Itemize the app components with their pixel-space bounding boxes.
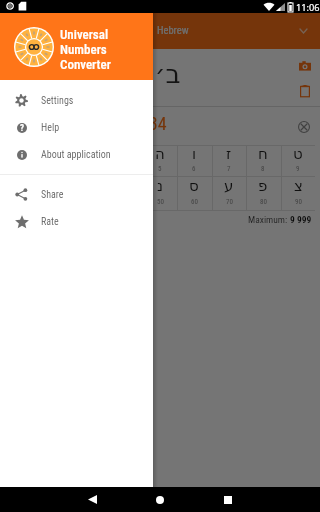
button[interactable]: ג <box>74 145 108 176</box>
staticText: 70 <box>226 198 233 206</box>
button[interactable]: Hebrew <box>0 13 320 49</box>
staticText: ג <box>88 145 95 162</box>
button[interactable]: ב <box>39 145 73 176</box>
button[interactable]: ו <box>177 145 211 176</box>
staticText: 9 <box>296 165 300 173</box>
staticText: Maximum: <box>248 214 290 225</box>
staticText: ו <box>192 145 197 162</box>
staticText: Converter <box>60 57 111 72</box>
button[interactable]: Rate <box>0 208 153 235</box>
staticText: פ <box>258 177 268 194</box>
staticText: ס <box>189 177 199 194</box>
button[interactable]: ס <box>177 176 211 210</box>
button[interactable]: ט <box>281 145 315 176</box>
button[interactable]: ח <box>246 145 280 176</box>
button[interactable]: ? <box>0 114 153 141</box>
staticText: ? <box>20 123 25 133</box>
button[interactable]: כ <box>39 176 73 210</box>
staticText: Rate <box>41 216 59 228</box>
staticText: 7 <box>227 165 231 173</box>
staticText: 11:06 <box>296 1 320 14</box>
button[interactable]: Scan with camera <box>294 55 315 76</box>
staticText: ז <box>226 145 232 162</box>
staticText: 80 <box>260 198 267 206</box>
staticText: ה <box>155 145 165 162</box>
button[interactable]: About application <box>0 141 153 168</box>
button[interactable]: Paste from clipboard <box>294 80 315 101</box>
staticText: 90 <box>295 198 302 206</box>
staticText: Universal <box>60 27 109 42</box>
staticText: ב <box>52 145 61 162</box>
staticText: Share <box>41 189 64 201</box>
staticText: Numbers <box>60 42 107 57</box>
staticText: ב׳ל״ד <box>109 59 181 89</box>
button[interactable]: Back <box>70 487 114 512</box>
staticText: About application <box>41 149 111 161</box>
staticText: ט <box>293 145 303 162</box>
button[interactable]: Settings <box>0 87 153 114</box>
button[interactable]: Share <box>0 181 153 208</box>
staticText: 2034 <box>131 113 167 134</box>
staticText: נ <box>157 177 164 194</box>
button[interactable]: ה <box>143 145 177 176</box>
staticText: 60 <box>191 198 198 206</box>
staticText: 5 <box>158 165 162 173</box>
button[interactable]: פ <box>246 176 280 210</box>
staticText: 10 <box>19 198 26 206</box>
staticText: כ <box>52 177 60 194</box>
staticText: 50 <box>157 198 164 206</box>
button[interactable]: צ <box>281 176 315 210</box>
staticText: י <box>20 177 24 194</box>
button[interactable]: Clear <box>294 117 314 137</box>
button[interactable]: Recent apps <box>206 487 250 512</box>
staticText: 8 <box>261 165 265 173</box>
button[interactable]: ז <box>212 145 246 176</box>
staticText: ח <box>258 145 268 162</box>
button[interactable]: Home <box>138 487 182 512</box>
staticText: Settings <box>41 95 74 107</box>
staticText: צ <box>294 177 303 194</box>
button[interactable]: נ <box>143 176 177 210</box>
button[interactable]: ד <box>108 145 142 176</box>
staticText: ע <box>224 177 234 194</box>
button[interactable]: י <box>5 176 39 210</box>
staticText: 6 <box>192 165 196 173</box>
button[interactable]: א <box>5 145 39 176</box>
staticText: 9 999 <box>290 214 312 225</box>
staticText: Help <box>41 122 60 134</box>
button[interactable]: ע <box>212 176 246 210</box>
staticText: א <box>17 145 28 162</box>
button[interactable] <box>0 0 320 512</box>
staticText: Hebrew <box>157 24 189 36</box>
